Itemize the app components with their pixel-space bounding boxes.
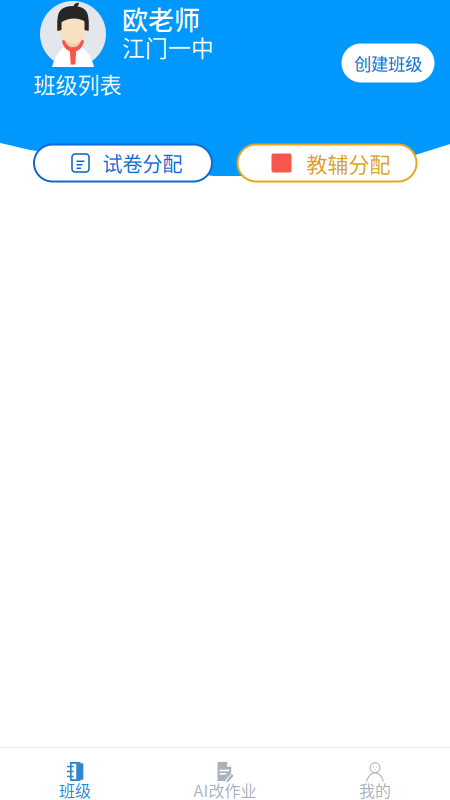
button[interactable]: AI改作业 — [150, 748, 300, 800]
button[interactable]: 班级 — [0, 748, 150, 800]
staticText: 我的 — [359, 778, 391, 800]
staticText: 班级列表 — [33, 67, 121, 99]
button[interactable]: 试卷分配 — [34, 144, 212, 181]
button[interactable]: 教辅分配 — [237, 144, 416, 181]
staticText: 创建班级 — [354, 50, 422, 76]
staticText: 教辅分配 — [306, 148, 390, 178]
staticText: 江门一中 — [122, 30, 214, 63]
staticText: 试卷分配 — [102, 148, 182, 177]
staticText: 班级 — [59, 778, 91, 800]
staticText: AI改作业 — [193, 778, 256, 800]
button[interactable]: 创建班级 — [341, 43, 434, 82]
button[interactable]: 我的 — [300, 748, 450, 800]
staticText: 欧老师 — [122, 0, 200, 37]
